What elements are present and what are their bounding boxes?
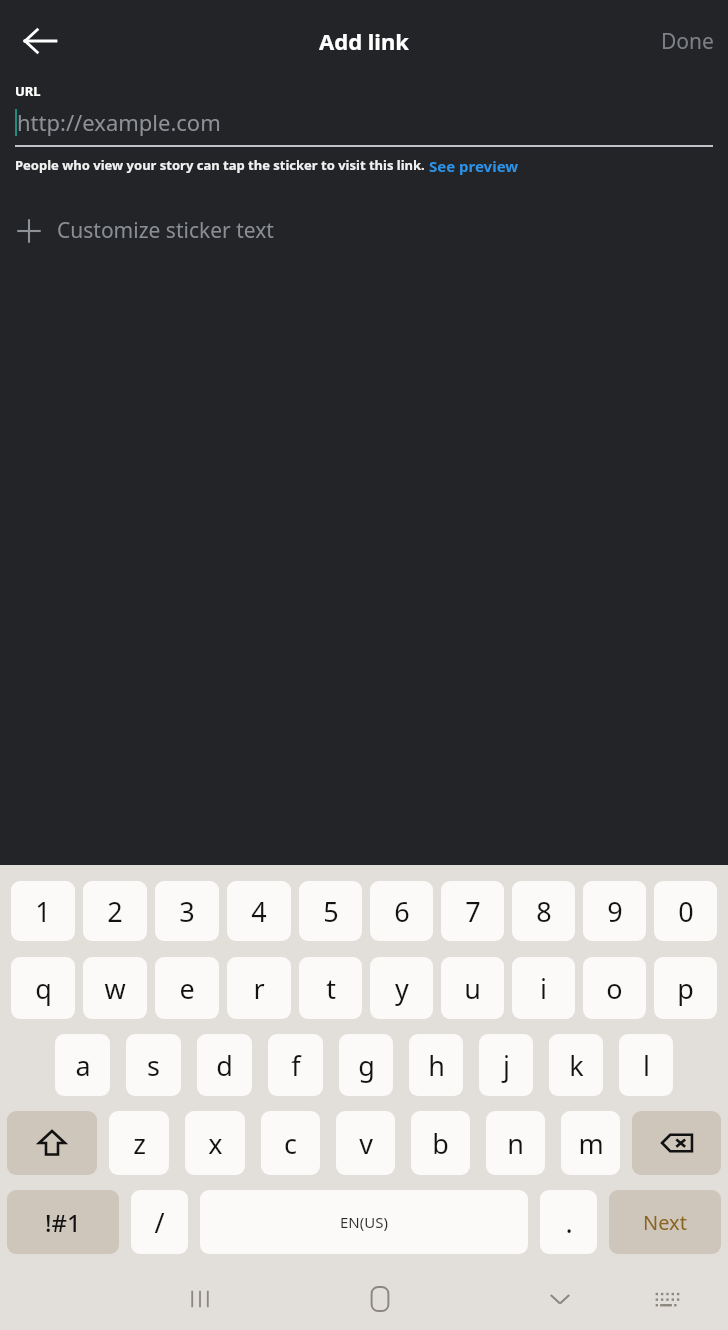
button[interactable]: Switch keyboard	[636, 1269, 696, 1329]
staticText: EN(US)	[340, 1212, 388, 1232]
button[interactable]: 2	[83, 881, 147, 941]
staticText: s	[147, 1047, 160, 1084]
button[interactable]: 4	[227, 881, 291, 941]
button[interactable]: Customize sticker text	[0, 206, 728, 255]
button[interactable]: g	[339, 1034, 393, 1096]
staticText: b	[432, 1125, 449, 1162]
button[interactable]: o	[583, 957, 646, 1019]
staticText: 4	[251, 893, 267, 930]
button[interactable]: 7	[441, 881, 504, 941]
button[interactable]: r	[227, 957, 291, 1019]
staticText: j	[503, 1047, 510, 1084]
staticText: 2	[107, 893, 123, 930]
staticText: 6	[394, 893, 410, 930]
staticText: k	[569, 1047, 584, 1084]
button[interactable]: w	[83, 957, 147, 1019]
button[interactable]: Backspace	[632, 1111, 721, 1175]
staticText: t	[326, 970, 336, 1007]
button[interactable]: 5	[299, 881, 362, 941]
button[interactable]: z	[109, 1111, 169, 1175]
button[interactable]: n	[486, 1111, 545, 1175]
staticText: z	[133, 1125, 146, 1162]
button[interactable]: x	[185, 1111, 245, 1175]
staticText: Add link	[319, 26, 409, 56]
staticText: 9	[607, 893, 623, 930]
staticText: !#1	[45, 1206, 81, 1239]
staticText: 7	[465, 893, 481, 930]
button[interactable]: d	[197, 1034, 252, 1096]
staticText: e	[179, 970, 195, 1007]
button[interactable]: a	[55, 1034, 110, 1096]
button[interactable]: 1	[11, 881, 75, 941]
staticText: w	[104, 970, 126, 1007]
staticText: y	[395, 970, 409, 1007]
button[interactable]: q	[11, 957, 75, 1019]
button[interactable]: f	[268, 1034, 323, 1096]
button[interactable]: s	[126, 1034, 181, 1096]
button[interactable]: 0	[654, 881, 717, 941]
staticText: URL	[15, 82, 41, 100]
button[interactable]: l	[619, 1034, 673, 1096]
button[interactable]: t	[299, 957, 362, 1019]
staticText: 0	[678, 893, 694, 930]
button[interactable]: Shift	[7, 1111, 97, 1175]
button[interactable]: v	[336, 1111, 395, 1175]
staticText: q	[35, 970, 52, 1007]
button[interactable]: Next	[609, 1190, 721, 1254]
button[interactable]: i	[512, 957, 575, 1019]
staticText: m	[578, 1125, 604, 1162]
staticText: r	[253, 970, 265, 1007]
staticText: h	[428, 1047, 445, 1084]
staticText: a	[75, 1047, 91, 1084]
staticText: p	[677, 970, 694, 1007]
staticText: f	[291, 1047, 301, 1084]
button[interactable]: 6	[370, 881, 433, 941]
staticText: 5	[323, 893, 339, 930]
button[interactable]: u	[441, 957, 504, 1019]
button[interactable]: b	[411, 1111, 470, 1175]
staticText: 3	[179, 893, 195, 930]
button[interactable]: Back	[8, 9, 72, 73]
staticText: i	[540, 970, 547, 1007]
button[interactable]: e	[155, 957, 219, 1019]
staticText: Next	[643, 1209, 687, 1236]
button[interactable]: !#1	[7, 1190, 119, 1254]
staticText: /	[154, 1204, 165, 1241]
staticText: People who view your story can tap the s…	[15, 156, 429, 174]
staticText: Customize sticker text	[57, 216, 274, 245]
button[interactable]: k	[549, 1034, 603, 1096]
button[interactable]: 9	[583, 881, 646, 941]
button[interactable]: Hide keyboard	[530, 1269, 590, 1329]
button[interactable]: /	[131, 1190, 188, 1254]
staticText: d	[216, 1047, 233, 1084]
staticText: c	[284, 1125, 297, 1162]
button[interactable]: .	[540, 1190, 597, 1254]
staticText: v	[359, 1125, 373, 1162]
staticText: x	[208, 1125, 223, 1162]
staticText: See preview	[429, 156, 519, 176]
button[interactable]: h	[409, 1034, 463, 1096]
button[interactable]: See preview	[429, 156, 519, 176]
staticText: l	[643, 1047, 650, 1084]
staticText: u	[464, 970, 481, 1007]
button[interactable]: Done	[647, 17, 728, 66]
button[interactable]: c	[261, 1111, 320, 1175]
staticText: 8	[536, 893, 552, 930]
button[interactable]: m	[561, 1111, 620, 1175]
staticText: .	[565, 1204, 573, 1241]
button[interactable]: EN(US)	[200, 1190, 528, 1254]
button[interactable]: 8	[512, 881, 575, 941]
staticText: 1	[35, 893, 51, 930]
staticText: g	[358, 1047, 375, 1084]
button[interactable]: p	[654, 957, 717, 1019]
button[interactable]: y	[370, 957, 433, 1019]
staticText: http://example.com	[17, 107, 221, 137]
button[interactable]: Recents	[170, 1269, 230, 1329]
button[interactable]: Home	[350, 1269, 410, 1329]
button[interactable]: 3	[155, 881, 219, 941]
button[interactable]: j	[479, 1034, 533, 1096]
staticText: o	[606, 970, 623, 1007]
staticText: n	[507, 1125, 524, 1162]
staticText: Done	[661, 27, 714, 56]
